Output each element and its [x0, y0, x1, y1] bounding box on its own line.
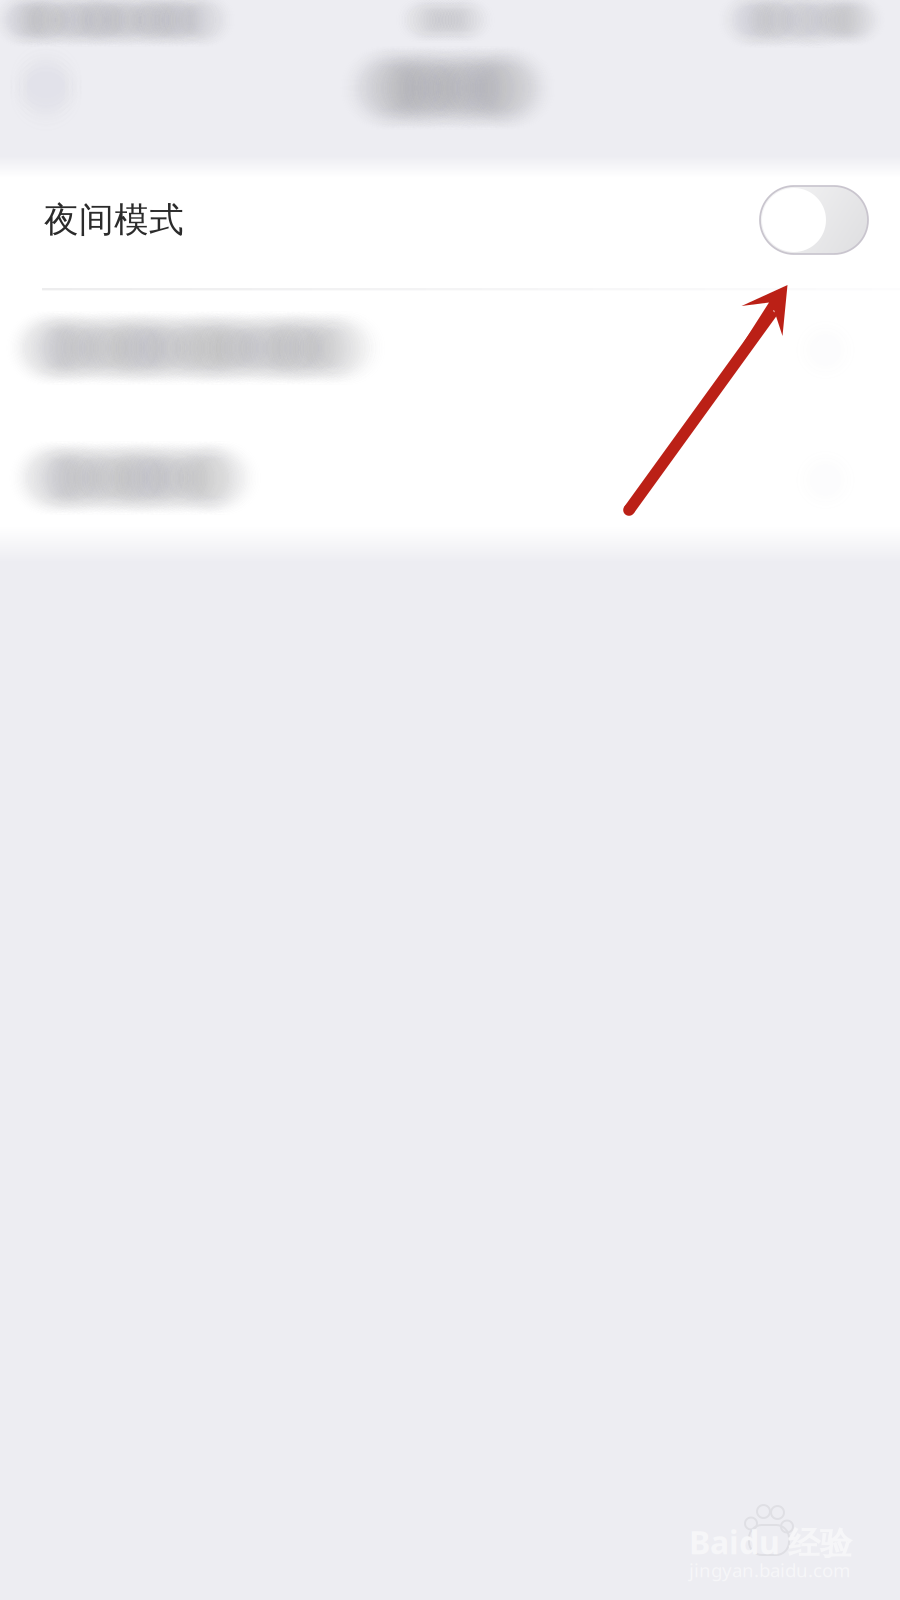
staticText: Baidu 经验: [689, 1521, 852, 1563]
button[interactable]: [0, 422, 900, 526]
staticText: 夜间模式: [44, 199, 184, 241]
button[interactable]: 夜间模式: [0, 155, 900, 285]
button[interactable]: [0, 290, 900, 422]
